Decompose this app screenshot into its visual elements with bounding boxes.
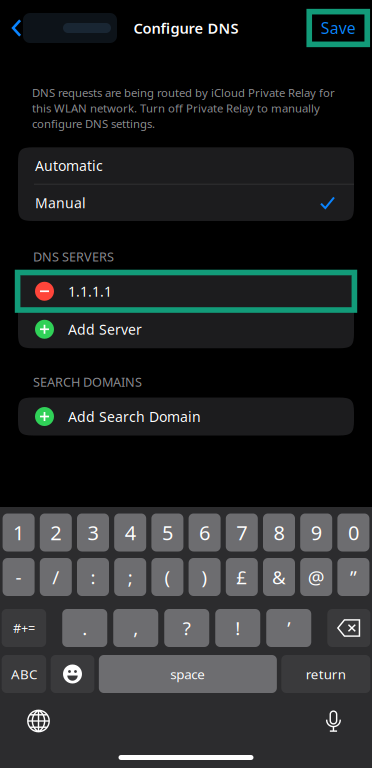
button[interactable]: £ [226, 558, 258, 596]
button[interactable]: 8 [263, 513, 295, 551]
staticText: : [90, 564, 95, 590]
staticText: SEARCH DOMAINS [33, 373, 142, 391]
button[interactable]: : [77, 558, 109, 596]
staticText: 0 [348, 519, 359, 546]
button[interactable]: , [113, 609, 158, 647]
button[interactable]: Emoji [51, 655, 94, 693]
staticText: ABC [11, 665, 37, 683]
button[interactable]: ” [337, 558, 369, 596]
staticText: 8 [273, 519, 284, 546]
button[interactable]: @ [300, 558, 332, 596]
button[interactable]: 1.1.1.1 [18, 272, 354, 310]
staticText: 6 [199, 519, 210, 546]
button[interactable]: ’ [266, 609, 311, 647]
button[interactable]: ! [215, 609, 260, 647]
staticText: / [52, 564, 59, 590]
button[interactable]: Dictate [314, 704, 352, 738]
button[interactable]: Add Search Domain [18, 397, 354, 435]
button[interactable]: Manual [18, 184, 354, 221]
button[interactable]: ? [164, 609, 209, 647]
staticText: Automatic [35, 156, 103, 175]
button[interactable]: . [62, 609, 107, 647]
staticText: ) [202, 564, 208, 590]
button[interactable]: Delete [327, 609, 370, 647]
staticText: return [306, 665, 346, 683]
button[interactable]: 7 [226, 513, 258, 551]
button[interactable]: Automatic [18, 147, 354, 184]
staticText: Add Server [68, 320, 142, 339]
staticText: ! [235, 615, 240, 641]
staticText: . [82, 615, 87, 641]
staticText: space [170, 665, 205, 683]
staticText: ? [183, 615, 191, 641]
staticText: ( [164, 564, 170, 590]
button[interactable]: Save [312, 6, 372, 50]
staticText: Manual [35, 193, 86, 212]
button[interactable]: 3 [77, 513, 109, 551]
staticText: - [16, 564, 22, 590]
button[interactable]: 1 [3, 513, 35, 551]
button[interactable]: 6 [189, 513, 221, 551]
staticText: 4 [125, 519, 136, 546]
staticText: 5 [162, 519, 173, 546]
button[interactable]: ; [114, 558, 146, 596]
button[interactable]: 4 [114, 513, 146, 551]
staticText: DNS requests are being routed by iCloud … [32, 85, 335, 131]
button[interactable]: ) [189, 558, 221, 596]
button[interactable]: 0 [337, 513, 369, 551]
staticText: Configure DNS [133, 18, 238, 38]
staticText: #+= [13, 619, 35, 637]
button[interactable]: ABC [2, 655, 46, 693]
staticText: ’ [287, 615, 290, 641]
button[interactable]: 2 [40, 513, 72, 551]
staticText: & [272, 564, 286, 590]
staticText: , [133, 615, 138, 641]
staticText: 1 [13, 519, 24, 546]
staticText: ; [128, 564, 133, 590]
staticText: £ [236, 564, 247, 590]
staticText: @ [308, 564, 325, 590]
staticText: 9 [311, 519, 322, 546]
staticText: Save [321, 17, 356, 39]
button[interactable]: 9 [300, 513, 332, 551]
staticText: 2 [50, 519, 61, 546]
staticText: 1.1.1.1 [68, 282, 112, 301]
staticText: 7 [236, 519, 247, 546]
button[interactable]: space [99, 655, 277, 693]
button[interactable]: Back [0, 6, 117, 50]
button[interactable]: & [263, 558, 295, 596]
button[interactable]: return [281, 655, 370, 693]
staticText: 3 [87, 519, 98, 546]
button[interactable]: 5 [151, 513, 183, 551]
button[interactable]: Add Server [18, 310, 354, 348]
button[interactable]: #+= [2, 609, 46, 647]
button[interactable]: / [40, 558, 72, 596]
button[interactable]: Next keyboard [19, 704, 57, 738]
button[interactable]: ( [151, 558, 183, 596]
staticText: ” [350, 564, 357, 590]
staticText: Add Search Domain [68, 407, 201, 426]
staticText: DNS SERVERS [33, 248, 114, 265]
button[interactable]: - [3, 558, 35, 596]
